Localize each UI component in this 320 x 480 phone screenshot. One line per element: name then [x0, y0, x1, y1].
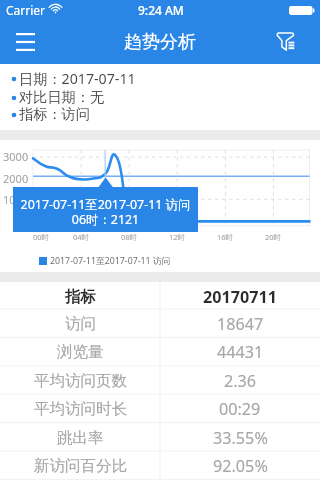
- staticText: 18647: [217, 313, 264, 335]
- staticText: 2017-07-11至2017-07-11 访问: [13, 196, 198, 213]
- staticText: 指标：访问: [19, 105, 90, 122]
- staticText: 04时: [73, 232, 90, 242]
- staticText: 1000: [3, 192, 29, 206]
- staticText: 访问: [65, 314, 96, 334]
- staticText: 日期：2017-07-11: [19, 69, 136, 86]
- staticText: 浏览量: [57, 342, 104, 362]
- staticText: 跳出率: [57, 428, 104, 448]
- staticText: 00时: [33, 232, 50, 242]
- button[interactable]: Menu: [0, 20, 50, 64]
- staticText: 平均访问时长: [34, 399, 127, 419]
- staticText: Carrier: [6, 2, 46, 18]
- staticText: 3000: [3, 149, 29, 163]
- staticText: 00:29: [219, 398, 261, 420]
- staticText: 92.05%: [213, 455, 268, 477]
- staticText: 2.36: [224, 370, 257, 392]
- staticText: 12时: [169, 232, 186, 242]
- button[interactable]: Filter: [276, 20, 320, 64]
- staticText: 9:24 AM: [138, 2, 184, 18]
- staticText: 06时：2121: [13, 211, 198, 228]
- staticText: 2017-07-11至2017-07-11 访问: [50, 255, 171, 267]
- staticText: 20时: [265, 232, 282, 242]
- staticText: 16时: [217, 232, 234, 242]
- staticText: 20170711: [203, 286, 278, 308]
- staticText: 44431: [217, 341, 264, 363]
- staticText: 趋势分析: [124, 31, 196, 54]
- staticText: 33.55%: [213, 427, 268, 449]
- staticText: 新访问百分比: [34, 456, 127, 476]
- staticText: 指标: [65, 287, 96, 307]
- staticText: 08时: [121, 232, 138, 242]
- staticText: 2000: [3, 171, 29, 185]
- staticText: 平均访问页数: [34, 371, 127, 391]
- staticText: 对比日期：无: [19, 88, 105, 105]
